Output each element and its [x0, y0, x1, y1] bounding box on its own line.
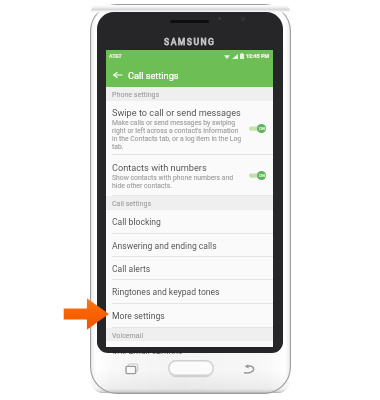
staticText: Voicemail	[112, 331, 144, 339]
staticText: Ringtones and keypad tones	[112, 287, 220, 297]
button[interactable]: More settings	[106, 304, 273, 328]
staticText: 12:45 PM	[246, 53, 270, 59]
button[interactable]: Call blocking	[106, 210, 273, 234]
button[interactable]: Home	[167, 359, 215, 377]
button[interactable]: Navigate up	[106, 62, 273, 87]
staticText: Call blocking	[112, 217, 161, 227]
button[interactable]: Answering and ending calls	[106, 234, 273, 257]
staticText: Answering and ending calls	[112, 241, 217, 251]
staticText: SAMSUNG	[164, 37, 216, 47]
staticText: Call settings	[112, 199, 152, 207]
staticText: Call settings	[128, 70, 179, 81]
staticText: Voicemail settings	[112, 348, 183, 354]
staticText: Make calls or send messages by swiping	[112, 119, 236, 127]
button[interactable]: Recent apps	[124, 361, 140, 377]
staticText: Phone settings	[112, 90, 160, 98]
button[interactable]: Swipe to call or send messages	[106, 101, 273, 155]
staticText: right or left across a contact's informa…	[112, 127, 239, 135]
staticText: ON	[259, 126, 265, 131]
button[interactable]: Call alerts	[106, 257, 273, 280]
staticText: More settings	[112, 311, 165, 321]
staticText: tab.	[112, 143, 124, 151]
staticText: in the Contacts tab, or a log item in th…	[112, 135, 242, 143]
staticText: Swipe to call or send messages	[112, 107, 241, 118]
button[interactable]: Navigate up	[111, 69, 123, 81]
button[interactable]: Contacts with numbers	[106, 155, 273, 196]
staticText: hide other contacts.	[112, 182, 173, 190]
staticText: Contacts with numbers	[112, 162, 207, 173]
button[interactable]: Ringtones and keypad tones	[106, 280, 273, 304]
staticText: Show contacts with phone numbers and	[112, 174, 234, 182]
staticText: Call alerts	[112, 264, 151, 274]
staticText: AT&T	[109, 53, 122, 59]
other: Pointer arrow to More settings	[63, 298, 109, 330]
button[interactable]: Back	[241, 361, 257, 377]
staticText: ON	[259, 173, 265, 178]
